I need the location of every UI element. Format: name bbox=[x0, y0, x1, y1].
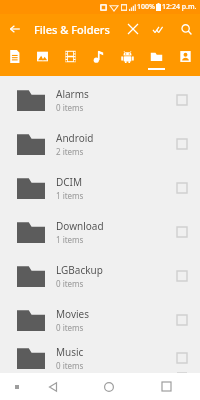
staticText: 12:24 p.m. bbox=[162, 2, 197, 12]
staticText: 0 items bbox=[56, 278, 84, 289]
button[interactable]: Movies bbox=[0, 298, 200, 342]
button[interactable]: Select LGBackup bbox=[167, 261, 197, 291]
button[interactable]: DCIM bbox=[0, 166, 200, 210]
button[interactable]: Back bbox=[0, 14, 30, 44]
staticText: 1 items bbox=[56, 234, 84, 245]
button[interactable]: Alarms bbox=[0, 78, 200, 122]
button[interactable]: Folders bbox=[142, 44, 171, 76]
button[interactable]: Search bbox=[172, 15, 200, 43]
staticText: LGBackup bbox=[56, 263, 103, 277]
button[interactable]: Select Music bbox=[167, 343, 197, 373]
button[interactable]: Select Download bbox=[167, 217, 197, 247]
staticText: 0 items bbox=[56, 322, 84, 333]
button[interactable]: Music bbox=[0, 342, 200, 373]
button[interactable]: Documents bbox=[0, 44, 28, 76]
staticText: 0 items bbox=[56, 360, 84, 371]
staticText: 2 items bbox=[56, 146, 84, 157]
button[interactable]: Select all bbox=[146, 16, 172, 42]
button[interactable]: Android bbox=[0, 122, 200, 166]
button[interactable]: Apps bbox=[113, 44, 142, 76]
staticText: Alarms bbox=[56, 87, 89, 101]
button[interactable]: Select Android bbox=[167, 129, 197, 159]
button[interactable]: Home bbox=[89, 373, 129, 400]
button[interactable]: Select Movies bbox=[167, 305, 197, 335]
button[interactable]: Menu dot bbox=[0, 373, 34, 400]
button[interactable]: Close bbox=[120, 16, 146, 42]
button[interactable]: Audio bbox=[84, 44, 113, 76]
button[interactable]: Contacts bbox=[171, 44, 200, 76]
button[interactable]: Back bbox=[34, 373, 72, 400]
button[interactable]: LGBackup bbox=[0, 254, 200, 298]
staticText: Download bbox=[56, 219, 104, 233]
button[interactable]: Videos bbox=[56, 44, 84, 76]
button[interactable]: Recents bbox=[146, 373, 186, 400]
staticText: 100% bbox=[137, 2, 155, 12]
staticText: 1 items bbox=[56, 190, 84, 201]
staticText: Music bbox=[56, 345, 84, 359]
staticText: Movies bbox=[56, 307, 90, 321]
staticText: Files & Folders bbox=[34, 22, 110, 37]
button[interactable]: Images bbox=[28, 44, 56, 76]
button[interactable]: Download bbox=[0, 210, 200, 254]
button[interactable]: Select Alarms bbox=[167, 85, 197, 115]
button[interactable]: Select DCIM bbox=[167, 173, 197, 203]
staticText: 0 items bbox=[56, 102, 84, 113]
staticText: Android bbox=[56, 131, 94, 145]
staticText: DCIM bbox=[56, 175, 83, 189]
